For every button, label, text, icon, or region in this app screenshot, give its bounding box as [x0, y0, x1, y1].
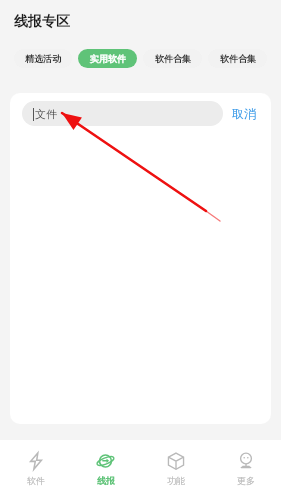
other: 线报: [97, 452, 115, 470]
button[interactable]: 文件: [22, 101, 223, 126]
staticText: 文件: [35, 107, 57, 121]
button[interactable]: 精选活动: [14, 49, 72, 68]
staticText: 软件: [27, 475, 45, 486]
button[interactable]: 软件: [0, 444, 71, 500]
button[interactable]: 更多: [211, 444, 281, 500]
button[interactable]: 取消: [223, 102, 265, 125]
staticText: 取消: [232, 106, 256, 121]
staticText: 线报专区: [14, 13, 70, 31]
staticText: 功能: [167, 475, 185, 486]
staticText: 精选活动: [25, 53, 61, 64]
button[interactable]: 实用软件: [78, 49, 137, 68]
staticText: 更多: [237, 475, 255, 486]
other: 功能: [167, 452, 185, 470]
staticText: 实用软件: [90, 53, 126, 64]
other: 更多: [237, 452, 255, 470]
button[interactable]: 功能: [141, 444, 211, 500]
other: 软件: [27, 452, 45, 470]
button[interactable]: 软件合集: [143, 49, 202, 68]
staticText: 软件合集: [220, 53, 256, 64]
staticText: 线报: [97, 475, 115, 486]
staticText: 软件合集: [155, 53, 191, 64]
button[interactable]: 软件合集: [208, 49, 267, 68]
button[interactable]: 线报: [71, 444, 141, 500]
